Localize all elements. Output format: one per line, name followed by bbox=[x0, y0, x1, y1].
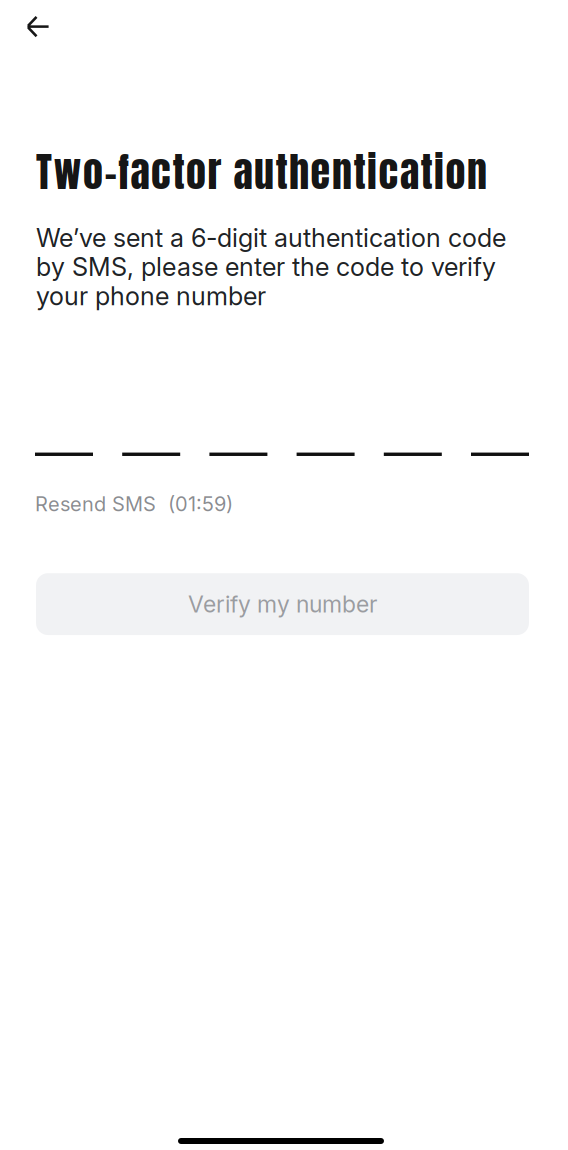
staticText: Verify my number bbox=[188, 590, 377, 618]
button[interactable]: Resend SMS (01:59) bbox=[0, 489, 233, 521]
button[interactable]: Verify my number bbox=[0, 573, 568, 635]
button[interactable]: Back bbox=[0, 0, 67, 52]
staticText: We’ve sent a 6-digit authentication code… bbox=[36, 223, 506, 311]
staticText: Resend SMS (01:59) bbox=[35, 492, 233, 516]
button[interactable]: Authentication code bbox=[0, 453, 568, 456]
staticText: Two-factor authentication bbox=[36, 142, 487, 202]
